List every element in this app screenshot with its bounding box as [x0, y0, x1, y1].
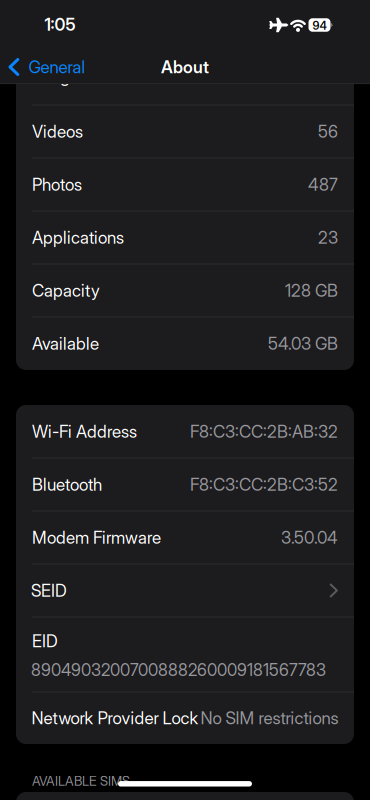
button[interactable]: SEID	[0, 0, 370, 800]
staticText: Bluetooth	[32, 474, 102, 495]
staticText: Applications	[32, 227, 124, 248]
staticText: Capacity	[32, 280, 100, 301]
staticText: 23	[318, 227, 338, 248]
staticText: 487	[308, 174, 338, 195]
staticText: 128 GB	[285, 280, 338, 301]
staticText: 1:05	[44, 14, 75, 35]
staticText: Network Provider Lock	[31, 708, 198, 728]
staticText: Available	[32, 333, 99, 354]
staticText: 54.03 GB	[268, 333, 338, 354]
staticText: EID	[32, 631, 58, 651]
staticText: No SIM restrictions	[200, 708, 338, 728]
staticText: General	[28, 57, 85, 77]
staticText: Photos	[32, 174, 82, 195]
staticText: 8904903200700888260009181567783	[31, 660, 326, 680]
staticText: About	[161, 57, 209, 77]
staticText: Modem Firmware	[32, 527, 161, 548]
staticText: 94	[312, 19, 326, 32]
staticText: Videos	[32, 121, 83, 142]
staticText: Songs	[32, 66, 78, 87]
staticText: 3.50.04	[281, 527, 338, 548]
staticText: F8:C3:CC:2B:C3:52	[190, 474, 338, 495]
staticText: AVAILABLE SIMS	[32, 773, 130, 789]
staticText: SEID	[31, 580, 67, 601]
button[interactable]: Back	[0, 0, 370, 84]
staticText: Wi-Fi Address	[32, 421, 137, 442]
staticText: F8:C3:CC:2B:AB:32	[190, 421, 338, 442]
staticText: 56	[318, 121, 338, 142]
